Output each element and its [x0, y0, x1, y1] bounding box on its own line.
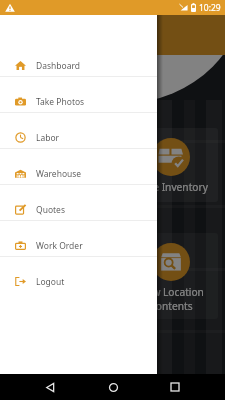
staticText: Quotes — [36, 204, 65, 216]
staticText: View Location Contents — [138, 285, 204, 313]
button[interactable]: Labor — [0, 113, 157, 148]
staticText: Labor — [36, 132, 60, 144]
button[interactable]: Warehouse — [0, 149, 157, 184]
button[interactable]: Back — [37, 374, 63, 400]
button[interactable]: Take Photos — [0, 77, 157, 112]
staticText: 10:29 — [199, 2, 221, 14]
staticText: Work Order — [36, 240, 83, 252]
button[interactable]: Recents — [162, 374, 188, 400]
button[interactable]: Logout — [0, 257, 157, 292]
button[interactable]: Home — [100, 374, 126, 400]
button[interactable]: Work Order — [0, 221, 157, 256]
staticText: Take Photos — [36, 96, 85, 108]
button[interactable]: Dashboard — [0, 41, 157, 76]
staticText: Cycle Inventory — [134, 180, 208, 194]
staticText: Logout — [36, 276, 65, 288]
staticText: Dashboard — [36, 60, 81, 72]
button[interactable]: Cycle Inventory — [134, 138, 208, 194]
button[interactable]: Quotes — [0, 185, 157, 220]
staticText: Warehouse — [36, 168, 82, 180]
button[interactable]: View Location Contents — [138, 243, 204, 313]
